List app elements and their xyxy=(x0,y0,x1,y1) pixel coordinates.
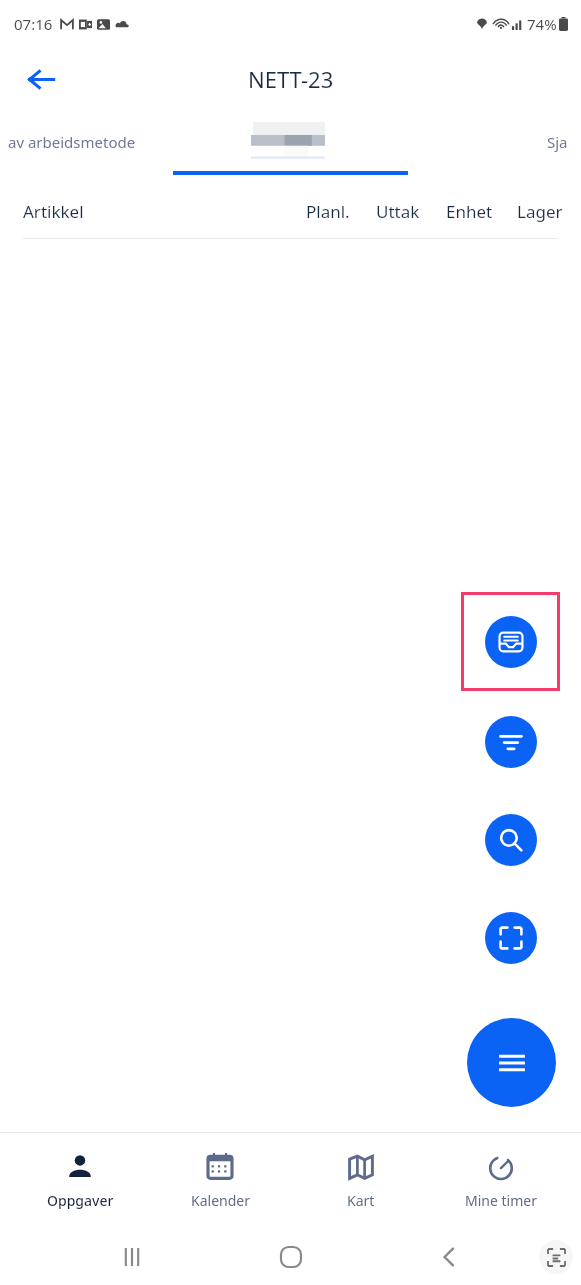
button[interactable]: Menu xyxy=(467,1018,556,1107)
staticText: av arbeidsmetode xyxy=(8,132,136,152)
button[interactable]: Mine timer xyxy=(441,1133,561,1229)
staticText: Lager xyxy=(517,200,563,223)
button[interactable]: av arbeidsmetode xyxy=(0,110,170,185)
staticText: Kalender xyxy=(191,1191,250,1210)
button[interactable]: Back xyxy=(14,52,68,106)
staticText: 74% xyxy=(527,14,557,34)
button[interactable]: Home xyxy=(265,1231,317,1283)
button[interactable]: Scan xyxy=(485,912,537,964)
staticText: 07:16 xyxy=(14,14,53,34)
button[interactable]: Sja xyxy=(501,110,581,185)
button[interactable]: Inbox xyxy=(461,592,560,691)
staticText: Uttak xyxy=(376,200,420,223)
button[interactable]: Kart xyxy=(301,1133,421,1229)
staticText: Mine timer xyxy=(465,1191,537,1210)
button[interactable]: Back xyxy=(423,1231,475,1283)
button[interactable]: Oppgaver xyxy=(20,1133,140,1229)
button[interactable]: Recents xyxy=(106,1231,158,1283)
staticText: Sja xyxy=(547,132,568,152)
staticText: Artikkel xyxy=(23,200,84,223)
staticText: Planl. xyxy=(306,200,350,223)
button[interactable]: Search xyxy=(485,814,537,866)
button[interactable]: Kalender xyxy=(160,1133,280,1229)
staticText: NETT-23 xyxy=(248,64,334,94)
staticText: Oppgaver xyxy=(47,1191,114,1210)
staticText: Enhet xyxy=(446,200,493,223)
button[interactable]: Filter xyxy=(485,716,537,768)
staticText: Kart xyxy=(347,1191,375,1210)
button[interactable]: Scan text xyxy=(539,1240,573,1274)
button[interactable] xyxy=(173,110,408,182)
